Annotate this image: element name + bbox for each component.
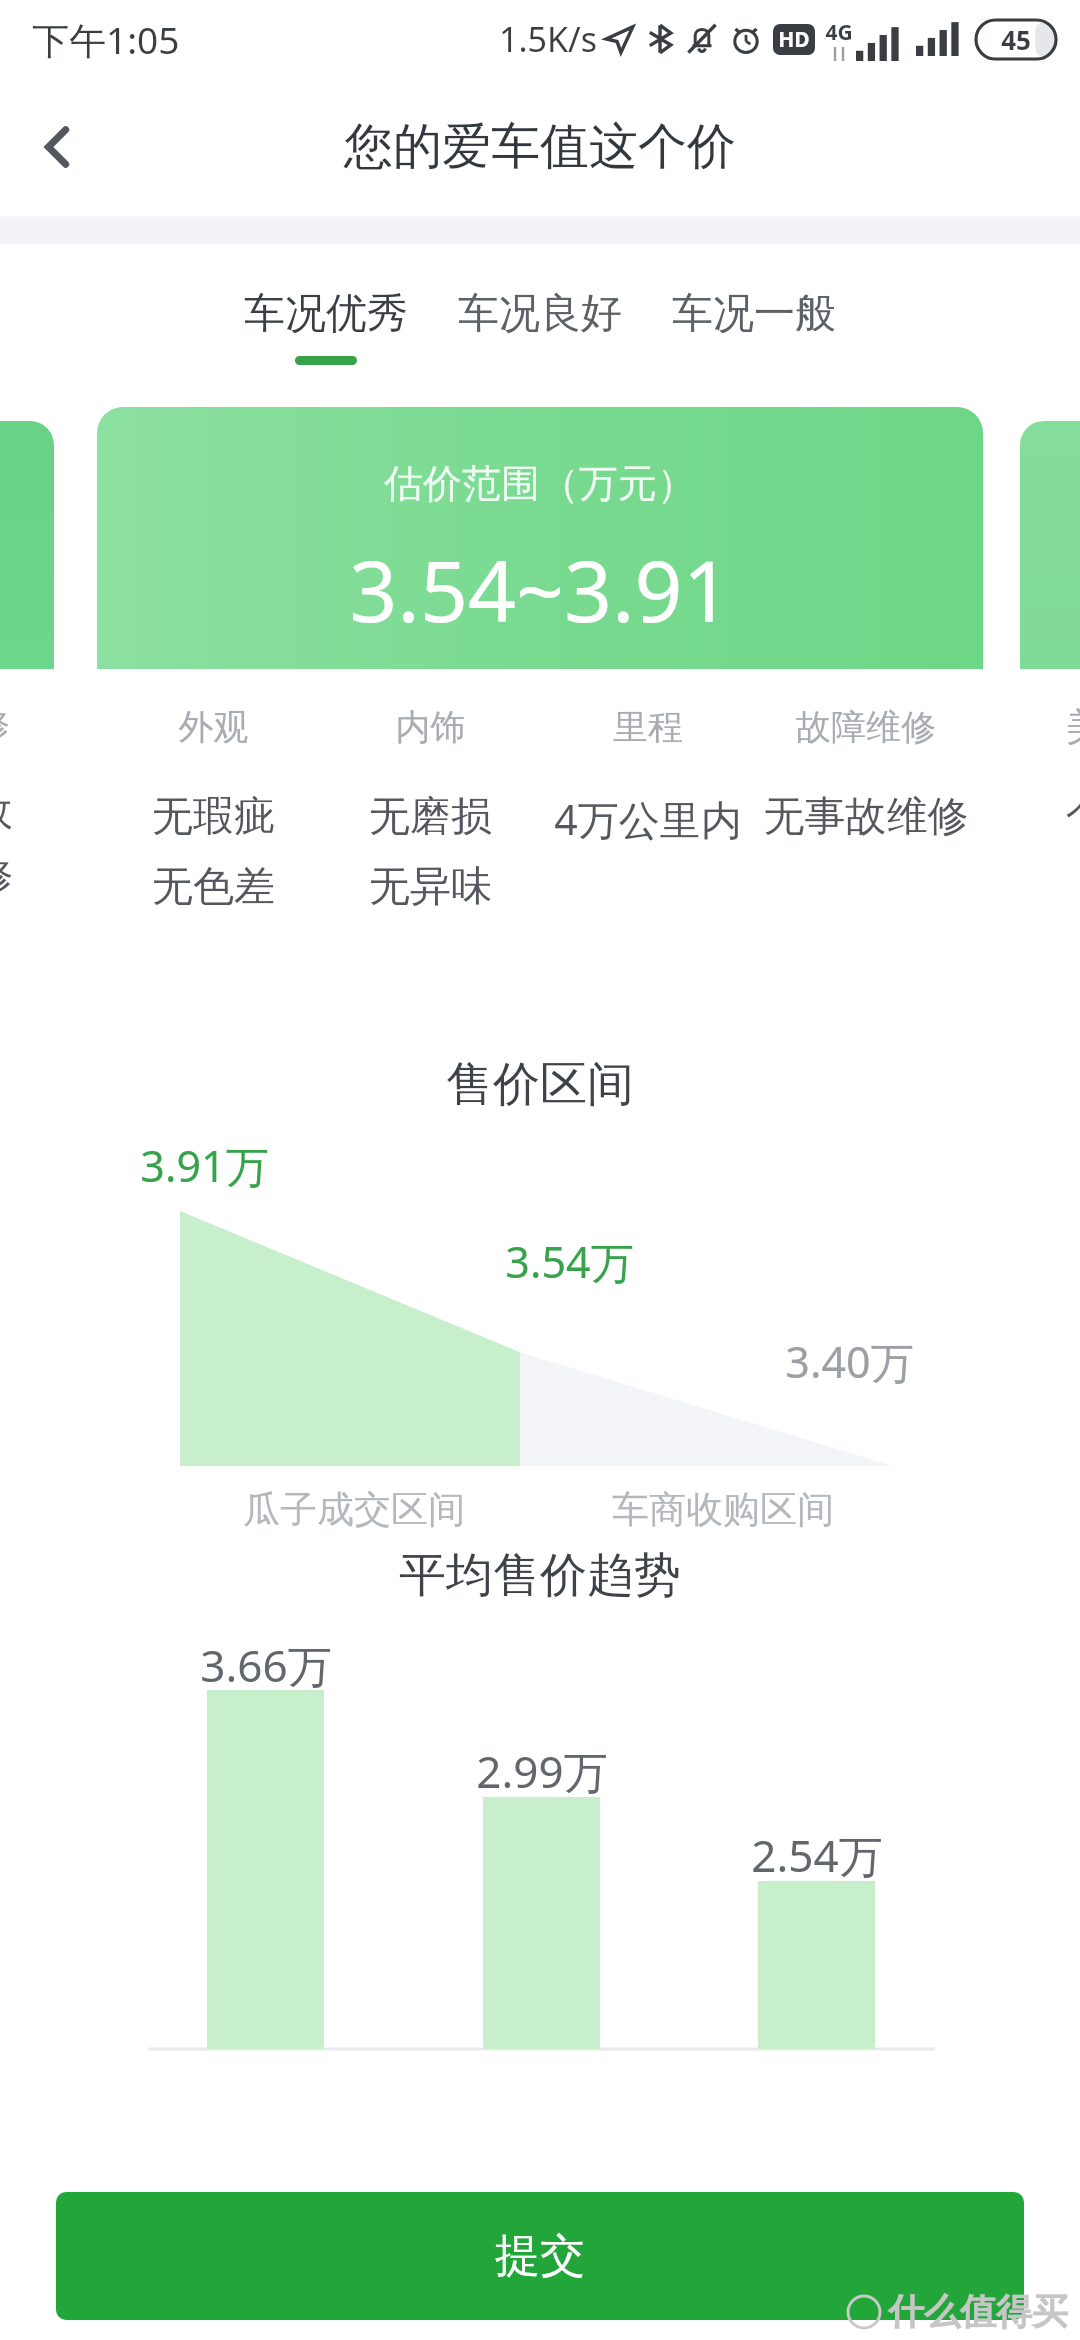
staticText: 车况一般: [672, 288, 836, 340]
button[interactable]: 车况良好: [454, 288, 626, 365]
button[interactable]: 车况优秀: [240, 288, 412, 365]
staticText: 无磨损: [322, 791, 539, 843]
staticText: 4G: [825, 18, 853, 47]
staticText: 平均售价趋势: [0, 1546, 1080, 1605]
staticText: 故: [0, 786, 54, 836]
staticText: 1.5K/s: [499, 16, 597, 62]
staticText: 车况优秀: [244, 288, 408, 340]
button[interactable]: 车况一般: [668, 288, 840, 365]
staticText: 4万公里内: [539, 791, 757, 847]
staticText: 无事故维修: [757, 791, 975, 843]
staticText: 3.54万: [505, 1232, 634, 1291]
staticText: 什么值得买: [888, 2289, 1068, 2334]
staticText: 您的爱车值这个价: [344, 116, 736, 178]
staticText: 无色差: [105, 861, 322, 913]
staticText: 3.40万: [785, 1332, 914, 1391]
staticText: 售价区间: [0, 1055, 1080, 1114]
staticText: 3.54~3.91: [97, 532, 983, 646]
staticText: 故障维修: [757, 705, 975, 749]
staticText: 无异味: [322, 861, 539, 913]
staticText: 3.66万: [200, 1635, 332, 1695]
staticText: 提交: [495, 2228, 585, 2285]
staticText: 内饰: [322, 705, 539, 749]
staticText: 无瑕疵: [105, 791, 322, 843]
button[interactable]: 返回: [14, 103, 102, 191]
staticText: HD: [778, 25, 810, 54]
button[interactable]: 提交: [56, 2192, 1024, 2320]
staticText: 瓜子成交区间: [243, 1486, 465, 1533]
staticText: 修: [0, 850, 54, 900]
button[interactable]: 估价范围（万元）: [97, 407, 983, 969]
staticText: 车商收购区间: [612, 1486, 834, 1533]
staticText: 美: [1020, 703, 1080, 751]
staticText: 里程: [539, 705, 757, 749]
staticText: 估价范围（万元）: [97, 459, 983, 508]
staticText: 45: [1001, 22, 1031, 57]
staticText: 外观: [105, 705, 322, 749]
staticText: 2.54万: [751, 1825, 883, 1885]
staticText: 下午1:05: [32, 14, 180, 65]
staticText: 2.99万: [476, 1741, 608, 1801]
staticText: 个: [1020, 791, 1080, 839]
staticText: 修: [0, 703, 54, 746]
staticText: 车况良好: [458, 288, 622, 340]
staticText: 3.91万: [140, 1136, 269, 1195]
